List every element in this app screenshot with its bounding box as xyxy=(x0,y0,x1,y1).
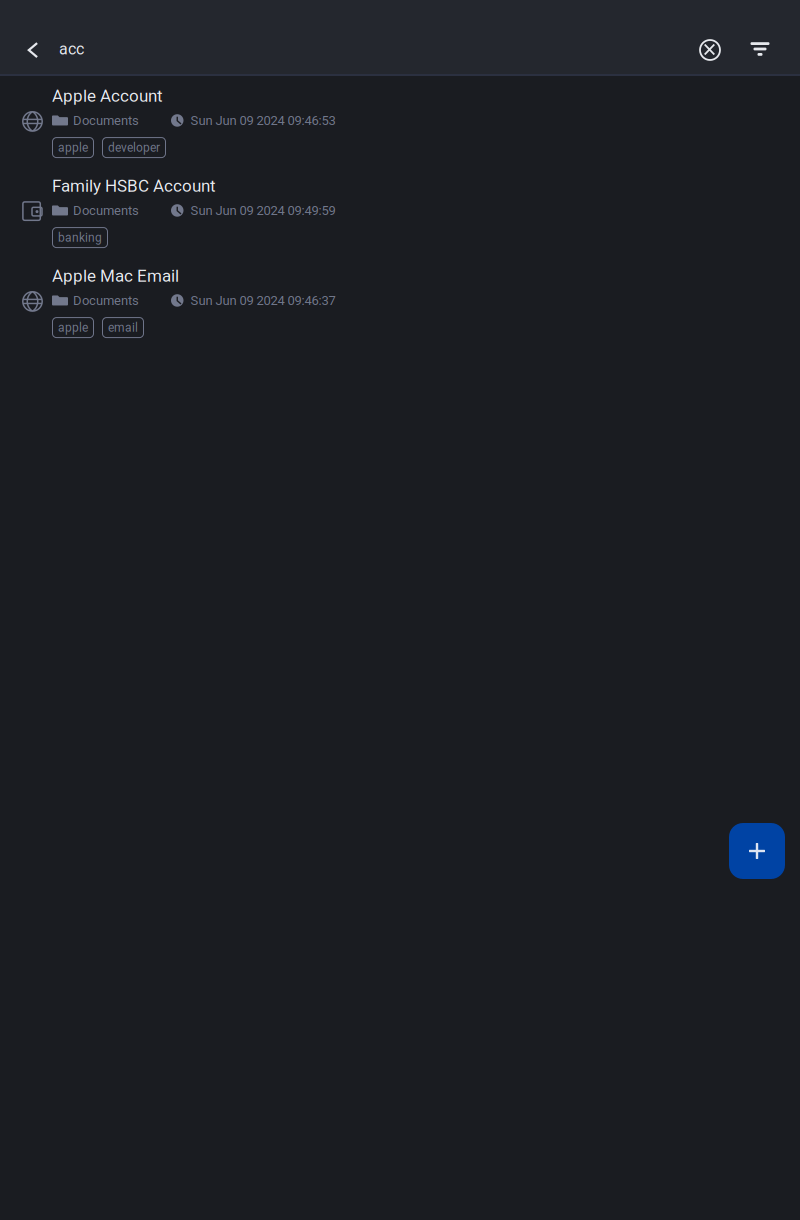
staticText: Sun Jun 09 2024 09:46:37 xyxy=(190,293,335,308)
staticText: developer xyxy=(108,140,160,155)
staticText: Apple Account xyxy=(52,86,163,106)
button[interactable]: Clear search xyxy=(685,24,735,74)
staticText: apple xyxy=(58,320,88,335)
staticText: Documents xyxy=(73,203,139,218)
staticText: Apple Mac Email xyxy=(52,266,179,286)
staticText: Documents xyxy=(73,293,139,308)
staticText: email xyxy=(108,320,138,335)
button[interactable]: Apple Mac Email xyxy=(0,256,800,346)
staticText: banking xyxy=(58,230,102,245)
staticText: apple xyxy=(58,140,88,155)
button[interactable]: Family HSBC Account xyxy=(0,166,800,256)
staticText: Sun Jun 09 2024 09:49:59 xyxy=(190,203,335,218)
staticText: Documents xyxy=(73,113,139,128)
staticText: Family HSBC Account xyxy=(52,176,216,196)
button[interactable]: Back xyxy=(18,24,48,74)
staticText: Sun Jun 09 2024 09:46:53 xyxy=(190,113,335,128)
button[interactable]: Apple Account xyxy=(0,76,800,166)
button[interactable]: Add new item xyxy=(729,823,785,879)
button[interactable]: Filter xyxy=(735,24,785,74)
staticText: acc xyxy=(59,40,84,58)
